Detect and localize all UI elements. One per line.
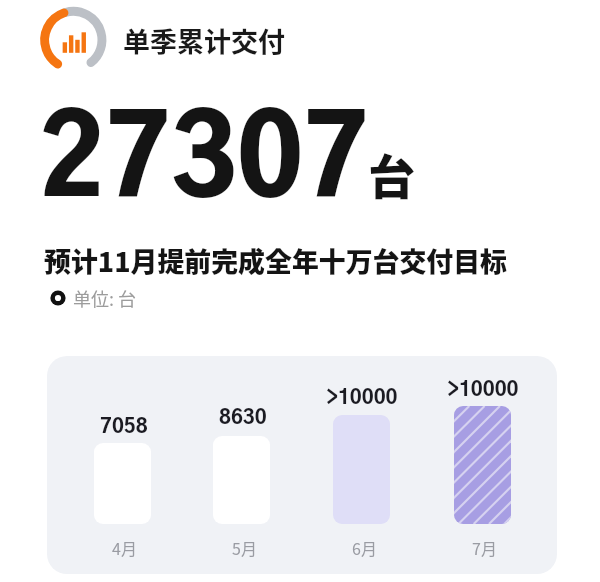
staticText: >10000 [326, 388, 398, 408]
button[interactable]: 6月 大于10000 [325, 372, 398, 562]
staticText: 7058 [100, 417, 148, 437]
staticText: >10000 [447, 380, 519, 400]
staticText: 5月 [232, 536, 257, 559]
button[interactable]: 7月 大于10000 [446, 372, 519, 562]
staticText: 8630 [219, 408, 267, 428]
button[interactable]: 单位: 台 [50, 285, 137, 311]
staticText: 6月 [352, 536, 377, 559]
staticText: 单季累计交付 [123, 21, 285, 60]
staticText: 预计11月提前完成全年十万台交付目标 [44, 241, 508, 280]
button[interactable]: 4月 7058 [86, 372, 159, 562]
staticText: 4月 [112, 536, 137, 559]
staticText: 台 [368, 139, 415, 207]
other: Quarterly delivery chart icon [40, 6, 108, 74]
button[interactable]: 4月 7058 [47, 356, 557, 574]
staticText: 单位: 台 [73, 285, 137, 311]
staticText: 27307 [39, 109, 369, 218]
button[interactable]: 5月 8630 [205, 372, 278, 562]
staticText: 7月 [472, 536, 497, 559]
